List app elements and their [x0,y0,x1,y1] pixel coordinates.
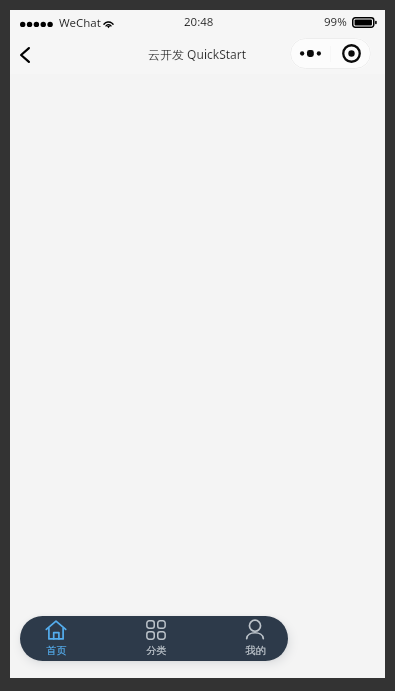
button[interactable]: More options [290,38,330,69]
button[interactable]: 首页 [33,616,79,661]
staticText: 首页 [46,644,67,657]
staticText: 云开发 QuickStart [148,46,247,62]
staticText: 分类 [146,644,167,657]
staticText: 99% [324,14,347,30]
button[interactable]: 分类 [133,616,179,661]
button[interactable]: 我的 [232,616,278,661]
button[interactable]: Close [331,38,371,69]
staticText: 我的 [245,644,266,657]
staticText: 20:48 [184,14,214,30]
button[interactable]: Back [7,37,43,73]
staticText: WeChat [59,15,101,31]
